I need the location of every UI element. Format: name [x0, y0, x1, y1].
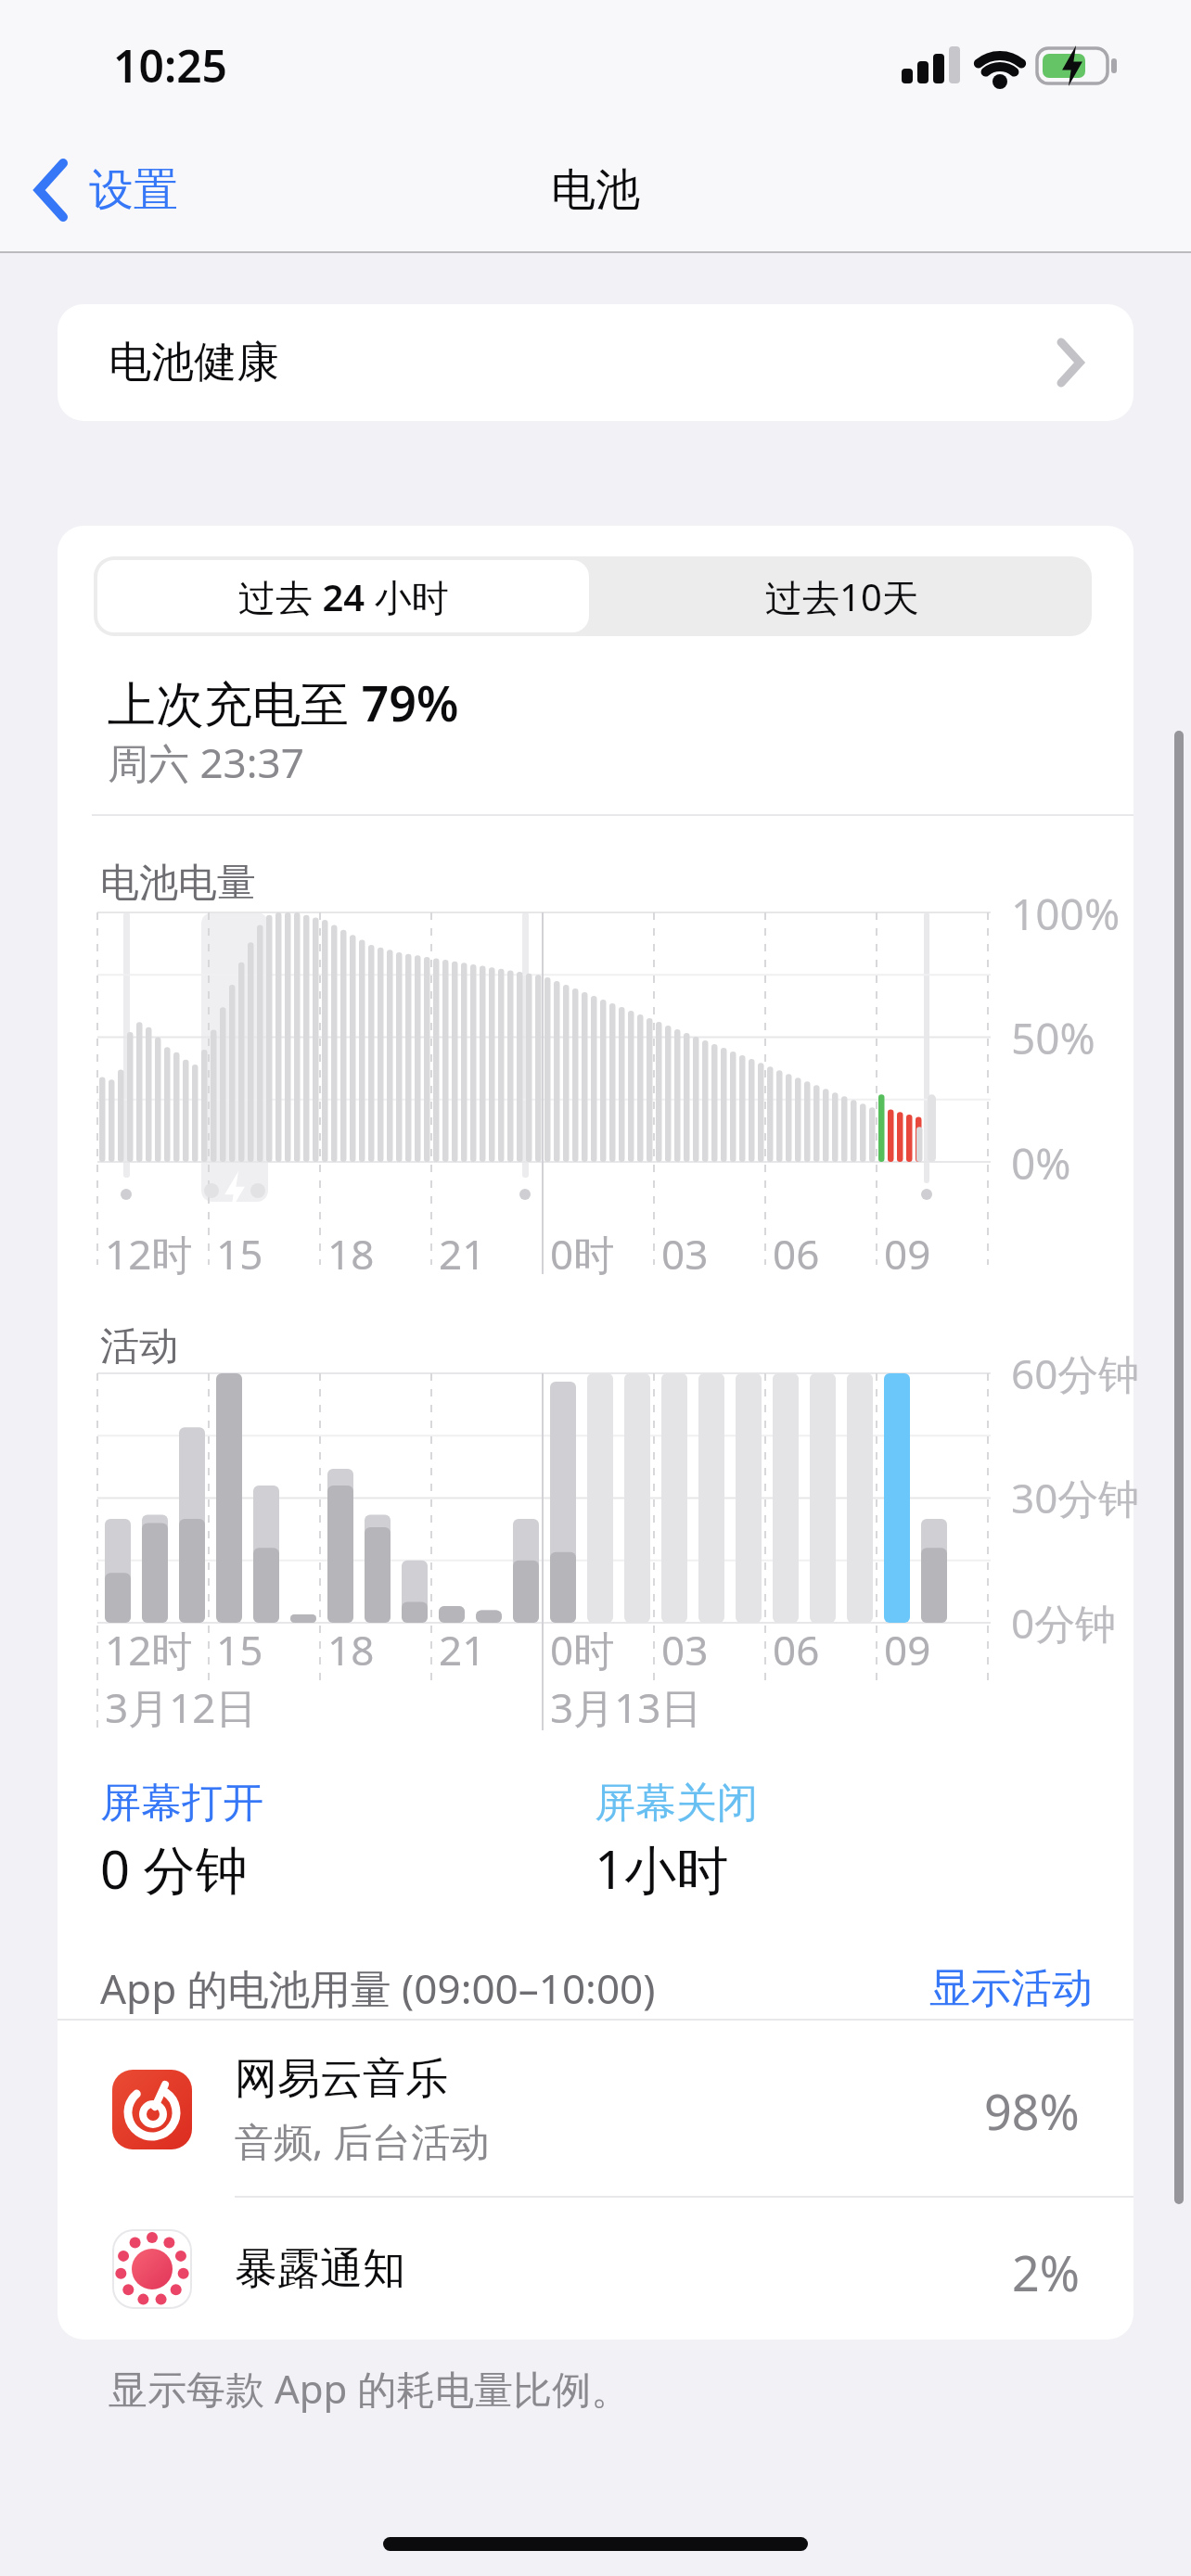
staticText: 06	[773, 1622, 820, 1677]
staticText: 09	[884, 1226, 931, 1282]
staticText: 过去10天	[765, 571, 919, 622]
staticText: 98%	[984, 2078, 1080, 2137]
staticText: 18	[327, 1226, 375, 1282]
button[interactable]	[58, 2198, 1133, 2339]
staticText: 50%	[1011, 1009, 1095, 1065]
staticText: 音频, 后台活动	[235, 2114, 490, 2167]
staticText: 1小时	[595, 1833, 729, 1898]
staticText: 15	[216, 1226, 263, 1282]
staticText: 18	[327, 1622, 375, 1677]
staticText: 30分钟	[1011, 1470, 1140, 1525]
staticText: 0 分钟	[100, 1833, 248, 1898]
staticText: 电池电量	[100, 859, 256, 908]
staticText: 周六 23:37	[108, 734, 304, 790]
button[interactable]: 显示活动	[889, 1960, 1093, 2016]
staticText: 15	[216, 1622, 263, 1677]
staticText: 0时	[550, 1622, 615, 1677]
button[interactable]	[58, 304, 1133, 421]
button[interactable]	[58, 2021, 1133, 2197]
staticText: 设置	[89, 162, 178, 218]
button[interactable]	[593, 560, 1092, 632]
staticText: 0%	[1011, 1134, 1071, 1190]
staticText: 电池健康	[109, 336, 279, 389]
staticText: 06	[773, 1226, 820, 1282]
button[interactable]: 设置	[28, 148, 204, 232]
staticText: 12时	[105, 1226, 193, 1282]
staticText: 21	[439, 1226, 486, 1282]
staticText: 03	[661, 1622, 709, 1677]
staticText: 2%	[1012, 2239, 1080, 2299]
staticText: 10:25	[113, 35, 228, 96]
staticText: 21	[439, 1622, 486, 1677]
staticText: 60分钟	[1011, 1345, 1140, 1401]
staticText: App 的电池用量 (09:00–10:00)	[100, 1960, 656, 2016]
staticText: 3月12日	[105, 1679, 257, 1735]
staticText: 暴露通知	[235, 2242, 405, 2296]
staticText: 09	[884, 1622, 931, 1677]
staticText: 显示活动	[929, 1963, 1093, 2014]
staticText: 上次充电至 79%	[108, 670, 459, 735]
staticText: 屏幕打开	[100, 1778, 263, 1829]
staticText: 屏幕关闭	[595, 1778, 758, 1829]
staticText: 0时	[550, 1226, 615, 1282]
staticText: 活动	[100, 1322, 178, 1371]
staticText: 过去 24 小时	[238, 571, 449, 622]
button[interactable]	[97, 560, 589, 632]
staticText: 网易云音乐	[235, 2052, 448, 2106]
staticText: 03	[661, 1226, 709, 1282]
staticText: 3月13日	[550, 1679, 702, 1735]
staticText: 电池	[551, 162, 640, 218]
staticText: 显示每款 App 的耗电量比例。	[109, 2362, 631, 2415]
staticText: 0分钟	[1011, 1595, 1117, 1651]
staticText: 100%	[1011, 885, 1121, 940]
staticText: 12时	[105, 1622, 193, 1677]
